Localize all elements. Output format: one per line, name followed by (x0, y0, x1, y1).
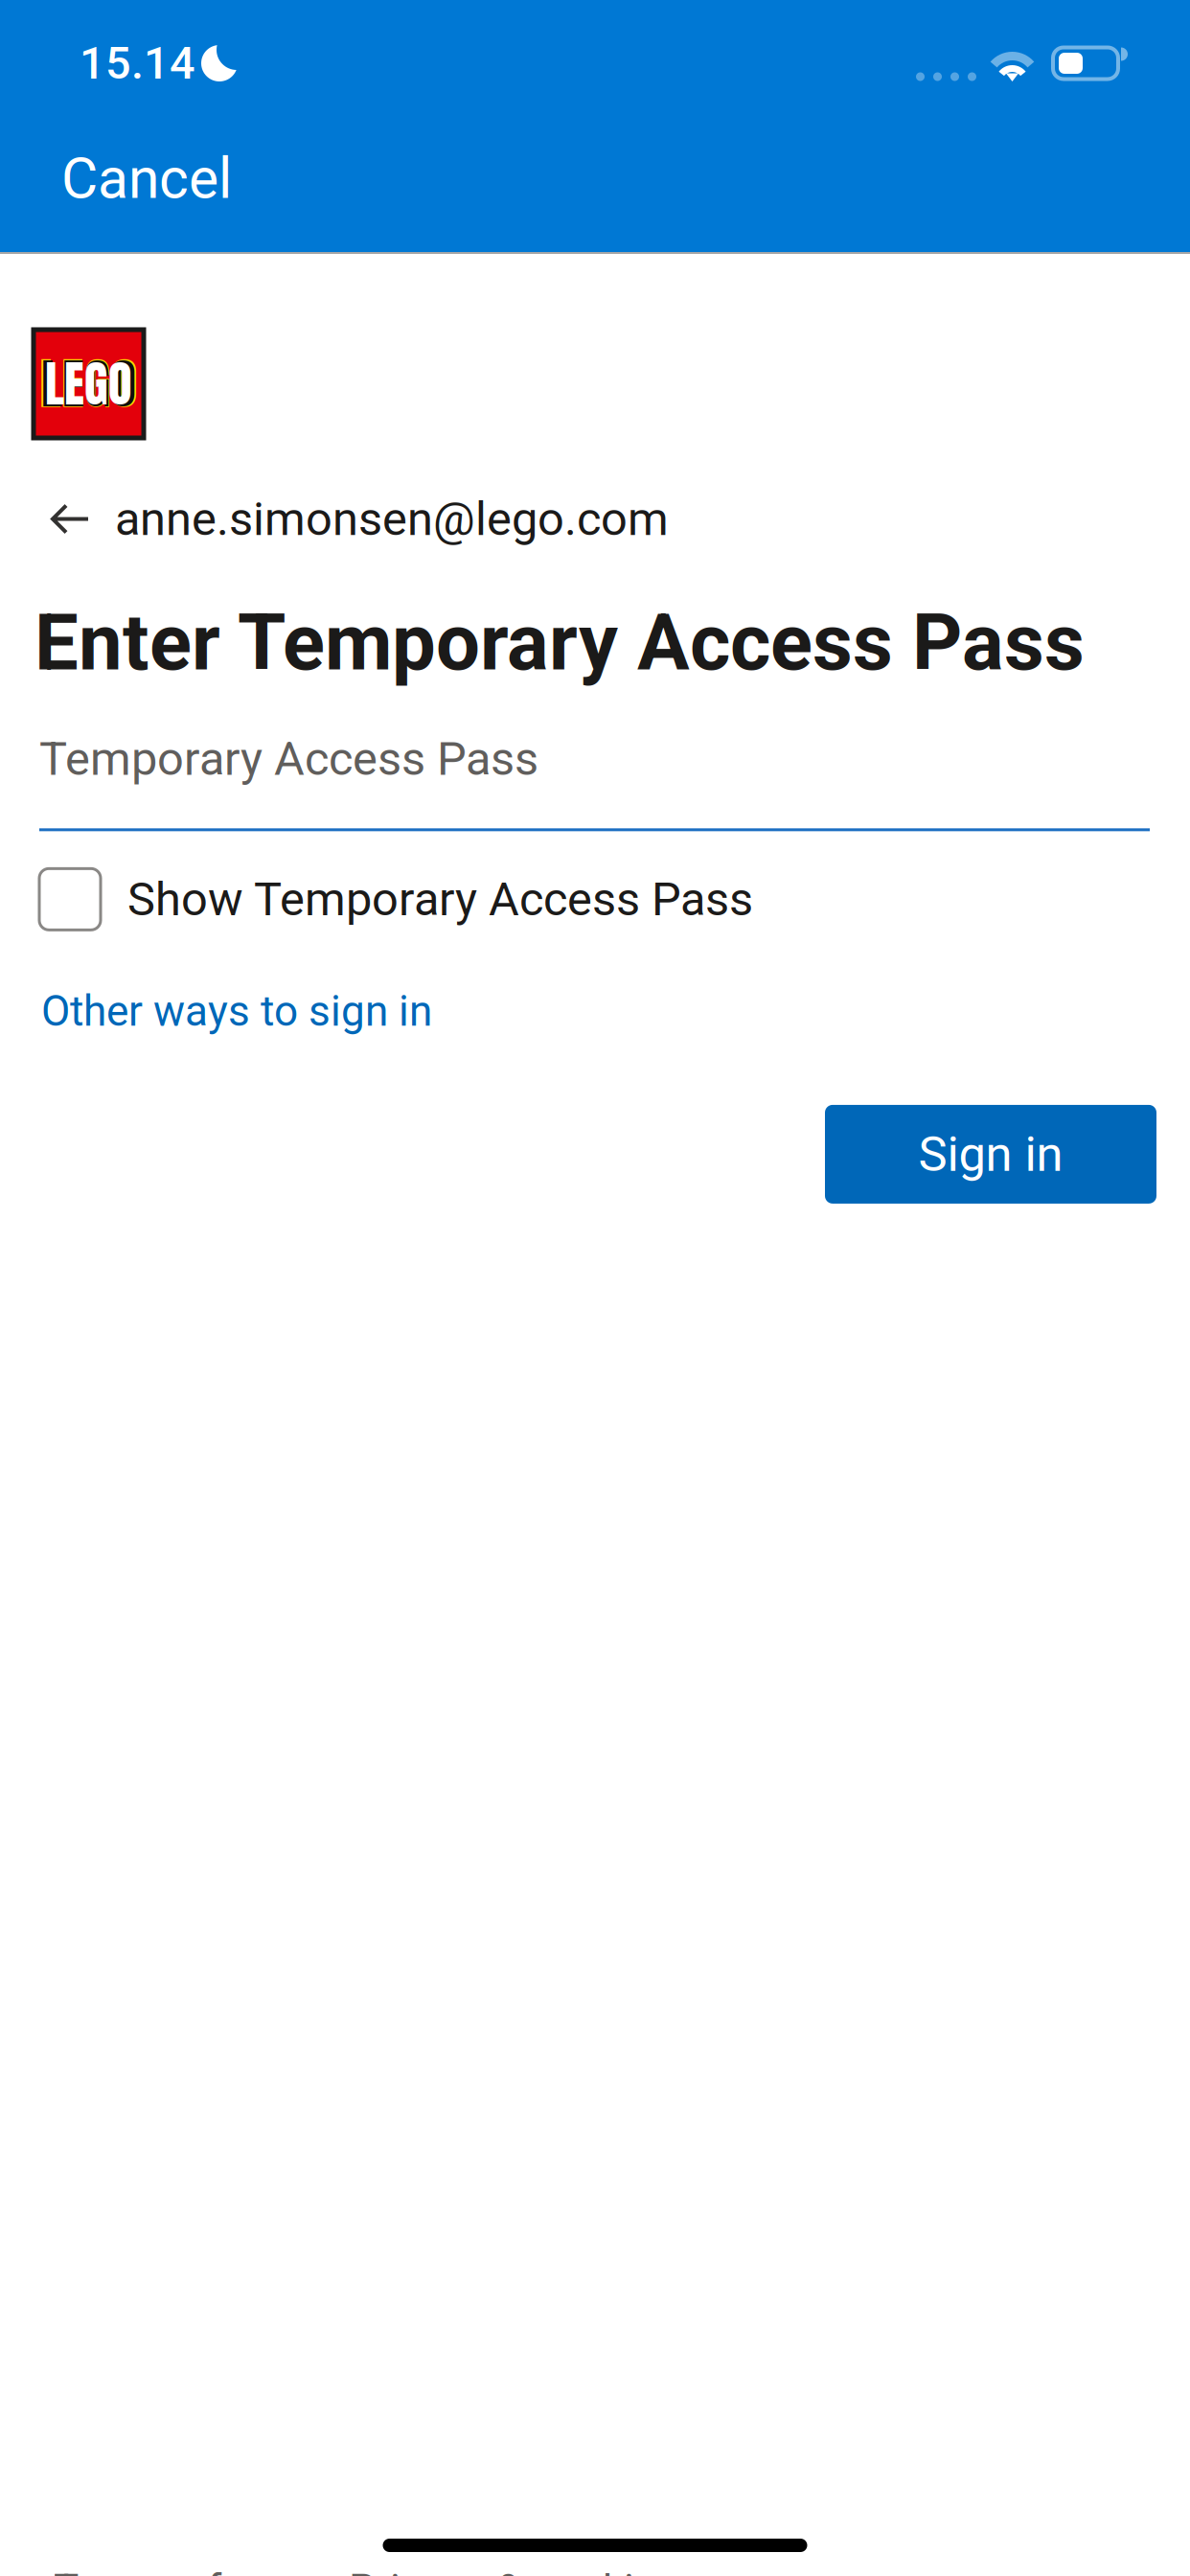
staticText: anne.simonsen@lego.com (115, 492, 669, 546)
staticText: Terms of use (54, 2565, 299, 2576)
staticText: LEGO (45, 347, 132, 420)
button[interactable]: anne.simonsen@lego.com (0, 438, 1190, 546)
staticText: Privacy & cookies (349, 2565, 678, 2576)
staticText: Temporary Access Pass (39, 731, 538, 786)
staticText: Sign in (918, 1126, 1063, 1183)
staticText: 15.14 (80, 37, 195, 90)
button[interactable]: Show Temporary Access Pass (0, 831, 1190, 930)
staticText: Other ways to sign in (41, 986, 432, 1036)
staticText: LEGO (41, 344, 136, 424)
button[interactable]: Terms of use (54, 2565, 299, 2576)
button[interactable]: Cancel (0, 126, 270, 231)
button[interactable]: Privacy & cookies (299, 2565, 678, 2576)
staticText: Cancel (61, 146, 232, 212)
staticText: Enter Temporary Access Pass (34, 597, 1085, 688)
staticText: Show Temporary Access Pass (127, 872, 753, 927)
staticText: LEGO (39, 342, 138, 425)
button[interactable]: Sign in (825, 1105, 1156, 1204)
button[interactable]: Other ways to sign in (0, 930, 1190, 1036)
